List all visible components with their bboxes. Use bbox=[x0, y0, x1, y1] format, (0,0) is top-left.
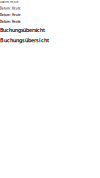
staticText: Datum: Heute bbox=[0, 20, 21, 23]
staticText: Buchungsübersicht bbox=[0, 26, 45, 33]
staticText: Datum: Heute bbox=[0, 13, 21, 17]
staticText: Datum: Heute bbox=[0, 7, 21, 10]
staticText: Buchungsübersicht bbox=[0, 36, 49, 44]
staticText: Datum: Heute bbox=[0, 0, 19, 4]
